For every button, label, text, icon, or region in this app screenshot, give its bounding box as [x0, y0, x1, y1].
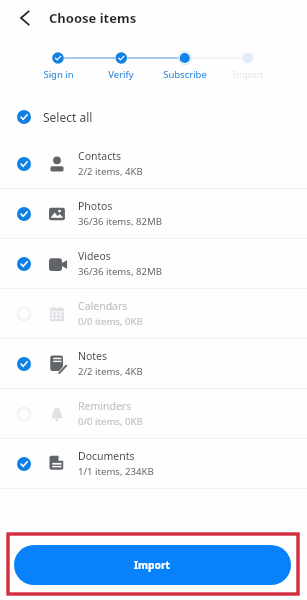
- staticText: 2/2 items, 4KB: [78, 165, 143, 178]
- staticText: 36/36 items, 82MB: [78, 215, 162, 228]
- staticText: Sign in: [43, 68, 74, 81]
- staticText: 0/0 items, 0KB: [78, 415, 143, 428]
- button[interactable]: Calendars: [0, 289, 307, 339]
- button[interactable]: Videos: [0, 239, 307, 289]
- button[interactable]: Back: [9, 2, 41, 34]
- staticText: 36/36 items, 82MB: [78, 265, 162, 278]
- staticText: Reminders: [78, 399, 132, 413]
- staticText: Photos: [78, 199, 113, 213]
- staticText: Notes: [78, 349, 108, 363]
- staticText: Verify: [108, 68, 134, 81]
- staticText: Select all: [43, 109, 93, 125]
- button[interactable]: Import: [14, 545, 291, 585]
- staticText: Import: [134, 558, 171, 572]
- button[interactable]: Select all: [0, 95, 307, 139]
- button[interactable]: Photos: [0, 189, 307, 239]
- button[interactable]: Contacts: [0, 139, 307, 189]
- staticText: Contacts: [78, 149, 122, 163]
- staticText: Subscribe: [163, 68, 207, 81]
- button[interactable]: Documents: [0, 439, 307, 489]
- staticText: Import: [232, 68, 264, 81]
- staticText: 1/1 items, 234KB: [78, 465, 154, 478]
- staticText: Calendars: [78, 299, 128, 313]
- staticText: Documents: [78, 449, 135, 463]
- staticText: 0/0 items, 0KB: [78, 315, 143, 328]
- button[interactable]: Reminders: [0, 389, 307, 439]
- staticText: Videos: [78, 249, 111, 263]
- button[interactable]: Notes: [0, 339, 307, 389]
- staticText: Choose items: [49, 9, 137, 27]
- staticText: 2/2 items, 4KB: [78, 365, 143, 378]
